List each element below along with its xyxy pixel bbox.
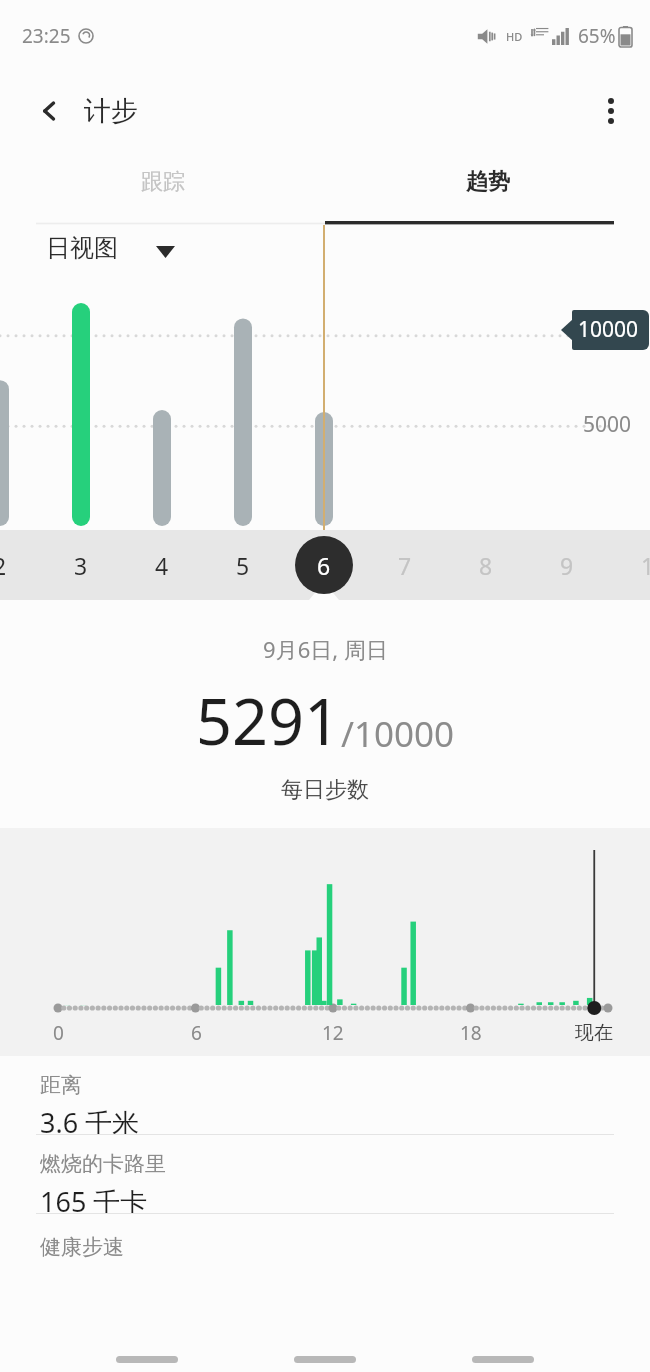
button[interactable]: Navigation button	[116, 1356, 178, 1363]
button[interactable]: 8	[456, 530, 516, 600]
staticText: /10000	[341, 710, 455, 758]
staticText: 健康步速	[40, 1234, 124, 1258]
staticText: 每日步数	[281, 776, 369, 804]
staticText: 燃烧的卡路里	[40, 1151, 166, 1177]
button[interactable]: 距离	[0, 1056, 650, 1134]
staticText: 10000	[578, 315, 639, 344]
staticText: 18	[460, 1020, 482, 1046]
staticText: 6	[191, 1020, 202, 1046]
staticText: 跟踪	[141, 168, 185, 196]
button[interactable]: 2	[0, 530, 30, 600]
button[interactable]: Back	[28, 89, 72, 133]
button[interactable]: More options	[588, 88, 634, 134]
button[interactable]: 1	[618, 530, 650, 600]
staticText: 9	[560, 550, 574, 581]
staticText: HD	[506, 29, 523, 44]
button[interactable]: 9	[537, 530, 597, 600]
staticText: 现在	[575, 1021, 613, 1045]
button[interactable]: 5	[213, 530, 273, 600]
staticText: 1	[641, 550, 650, 581]
staticText: 3	[74, 550, 88, 581]
staticText: 4	[155, 550, 169, 581]
staticText: 9月6日, 周日	[263, 634, 388, 664]
staticText: 6	[317, 550, 331, 581]
staticText: 12	[322, 1020, 344, 1046]
button[interactable]: 3	[51, 530, 111, 600]
staticText: 7	[398, 550, 412, 581]
button[interactable]: 0	[0, 828, 650, 1056]
button[interactable]: 燃烧的卡路里	[0, 1135, 650, 1213]
staticText: 日视图	[46, 233, 118, 263]
staticText: 2	[0, 550, 7, 581]
button[interactable]: Navigation button	[294, 1356, 356, 1363]
staticText: 距离	[40, 1072, 82, 1098]
staticText: 165 千卡	[40, 1183, 148, 1213]
staticText: 65%	[578, 23, 616, 49]
staticText: 8	[479, 550, 493, 581]
button[interactable]: 跟踪	[0, 150, 325, 225]
staticText: 3.6 千米	[40, 1104, 140, 1134]
staticText: 5000	[583, 410, 632, 439]
staticText: 23:25	[22, 23, 71, 49]
staticText: 趋势	[466, 168, 510, 196]
staticText: 0	[53, 1020, 64, 1046]
button[interactable]: 6	[294, 530, 354, 600]
button[interactable]: 趋势	[325, 150, 650, 225]
staticText: 5291	[196, 678, 341, 764]
button[interactable]: 7	[375, 530, 435, 600]
staticText: 5	[236, 550, 250, 581]
staticText: 计步	[84, 94, 138, 128]
button[interactable]: 健康步速	[0, 1214, 650, 1258]
button[interactable]: 4	[132, 530, 192, 600]
button[interactable]: Navigation button	[472, 1356, 534, 1363]
button[interactable]: Change view	[148, 239, 182, 265]
